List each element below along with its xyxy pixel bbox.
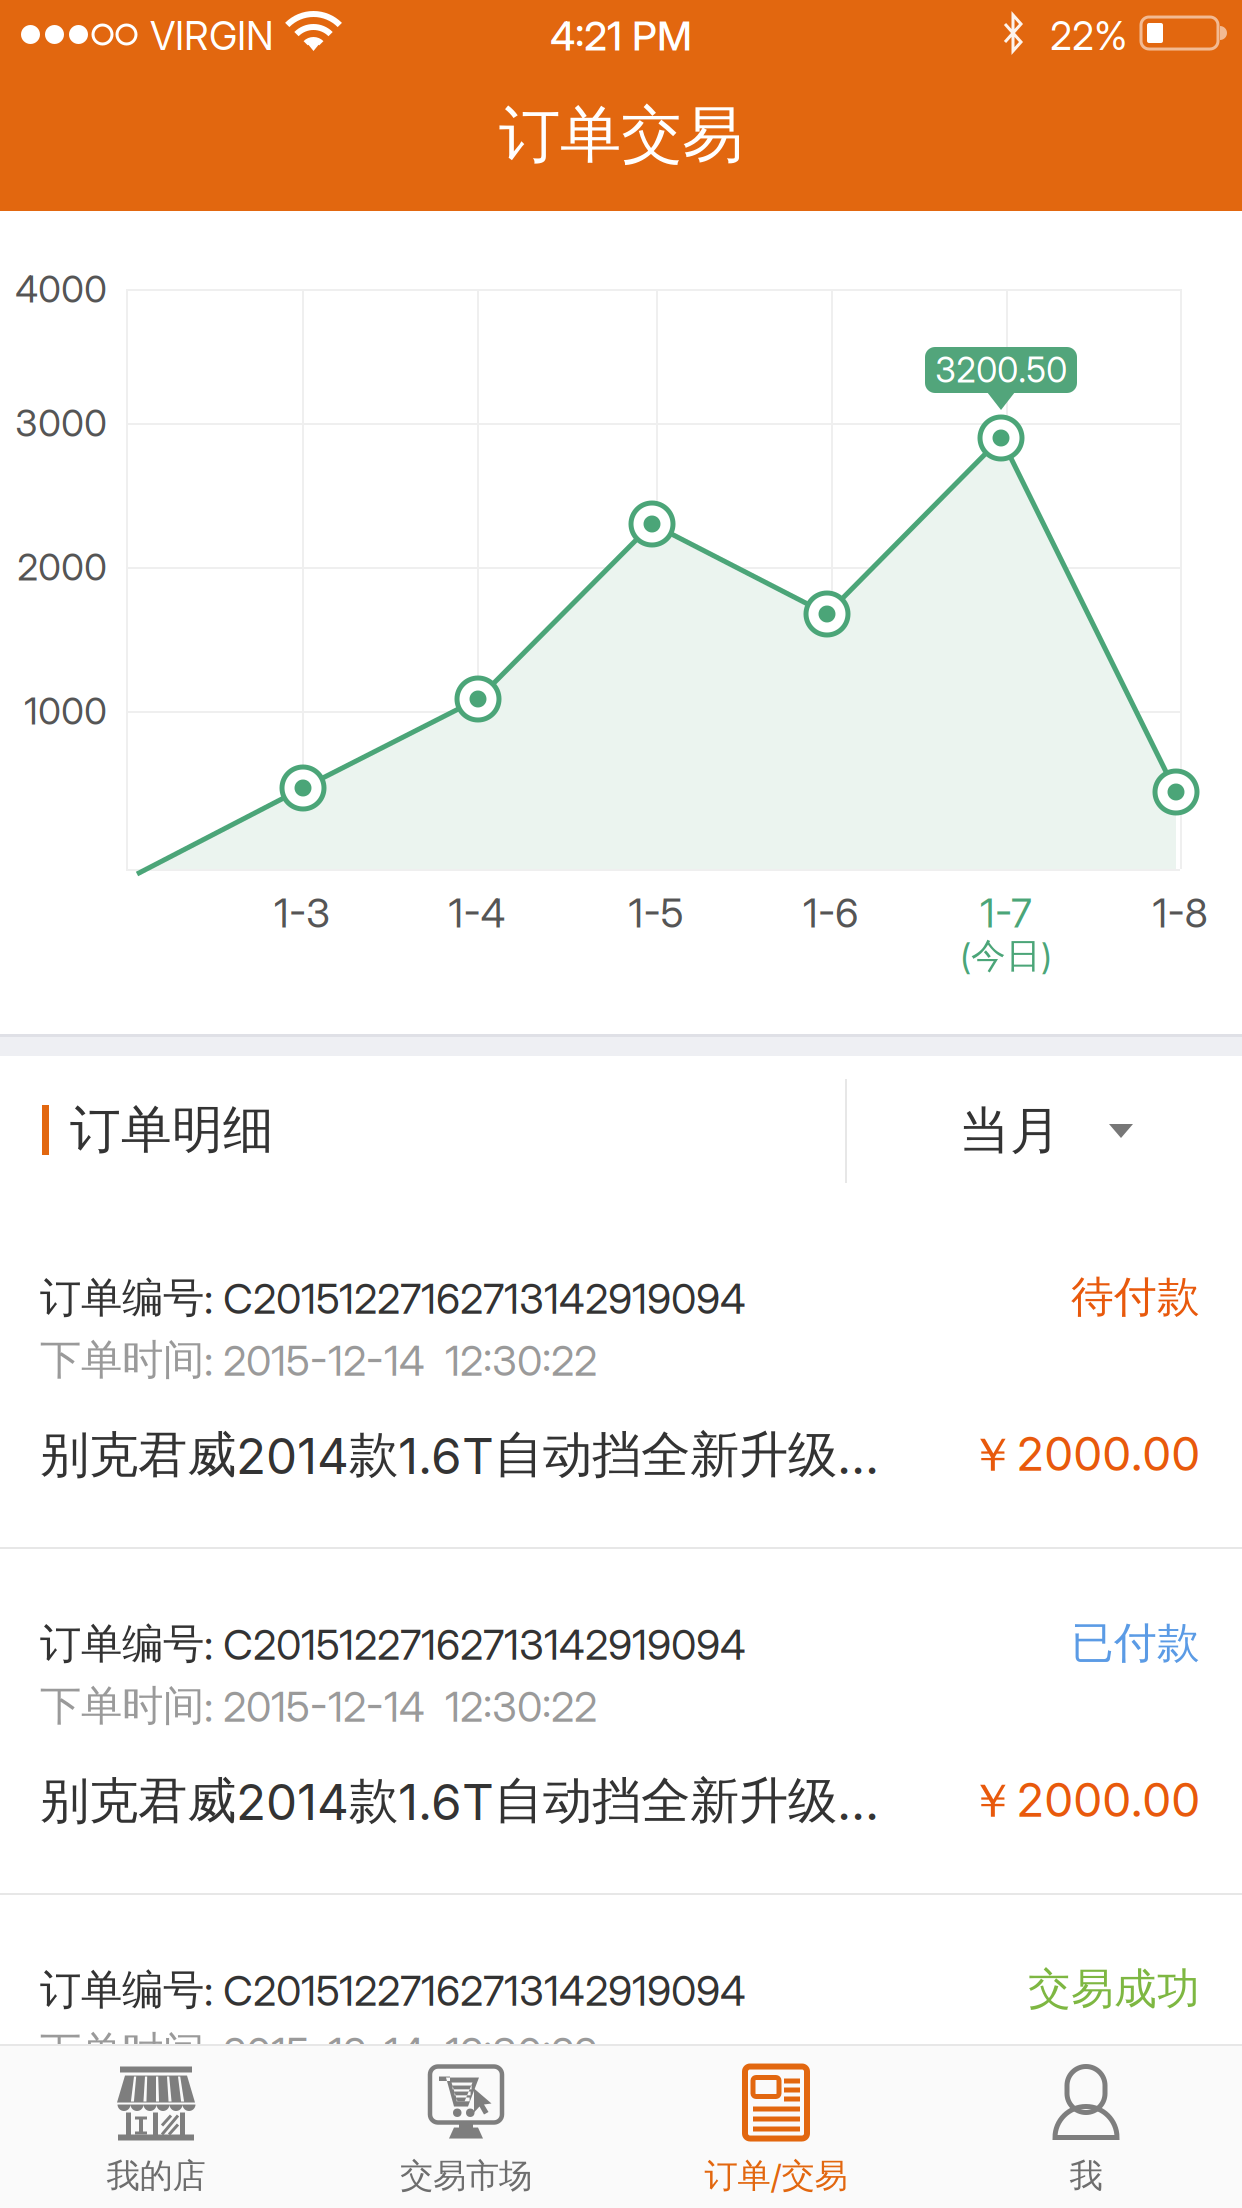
staticText: ￥2000.00 [969, 1425, 1200, 1485]
staticText: 1-3 [274, 889, 330, 937]
staticText: 3200.50 [935, 349, 1067, 391]
button[interactable]: 订单编号: C20151227162713142919094 [0, 1895, 1242, 2208]
staticText: 待付款 [1071, 1270, 1200, 1324]
staticText: 已付款 [1071, 1616, 1200, 1670]
button[interactable]: 我的店 [1, 2046, 311, 2208]
button[interactable]: 交易市场 [311, 2046, 621, 2208]
staticText: 我 [1069, 2155, 1102, 2197]
staticText: 1-7 [980, 889, 1032, 937]
staticText: 下单时间: 2015-12-14 12:30:22 [40, 2026, 597, 2078]
button[interactable]: 我 [931, 2046, 1241, 2208]
staticText: 别克君威2014款1.6T自动挡全新升级... [40, 2116, 879, 2178]
staticText: 订单编号: C20151227162713142919094 [40, 1272, 746, 1324]
staticText: 2000 [17, 544, 107, 590]
staticText: 订单编号: C20151227162713142919094 [40, 1618, 746, 1670]
staticText: 下单时间: 2015-12-14 12:30:22 [40, 1680, 597, 1732]
staticText: VIRGIN [150, 13, 274, 59]
staticText: 订单交易 [499, 96, 743, 174]
staticText: 别克君威2014款1.6T自动挡全新升级... [40, 1770, 879, 1832]
staticText: 4000 [15, 266, 107, 312]
staticText: 22% [1050, 13, 1128, 59]
button[interactable]: 当月 [845, 1056, 1242, 1206]
staticText: 订单明细 [70, 1098, 274, 1162]
staticText: 订单/交易 [704, 2155, 847, 2197]
staticText: 当月 [959, 1099, 1061, 1163]
staticText: 1-8 [1152, 889, 1207, 937]
button[interactable]: 订单/交易 [621, 2046, 931, 2208]
staticText: 1000 [24, 688, 107, 734]
staticText: 1-6 [803, 889, 859, 937]
staticText: 我的店 [106, 2155, 205, 2197]
staticText: 3000 [15, 400, 107, 446]
staticText: ￥2000.00 [969, 1771, 1200, 1831]
button[interactable]: 订单编号: C20151227162713142919094 [0, 1203, 1242, 1549]
staticText: ￥2000.00 [969, 2117, 1200, 2177]
staticText: 交易成功 [1028, 1962, 1200, 2016]
staticText: 交易市场 [400, 2155, 532, 2197]
staticText: 4:21 PM [550, 12, 692, 60]
staticText: 订单编号: C20151227162713142919094 [40, 1964, 746, 2016]
staticText: 1-4 [448, 889, 505, 937]
staticText: 1-5 [628, 889, 683, 937]
button[interactable]: 订单编号: C20151227162713142919094 [0, 1549, 1242, 1895]
staticText: (今日) [960, 934, 1052, 978]
staticText: 别克君威2014款1.6T自动挡全新升级... [40, 1424, 879, 1486]
staticText: 下单时间: 2015-12-14 12:30:22 [40, 1334, 597, 1386]
